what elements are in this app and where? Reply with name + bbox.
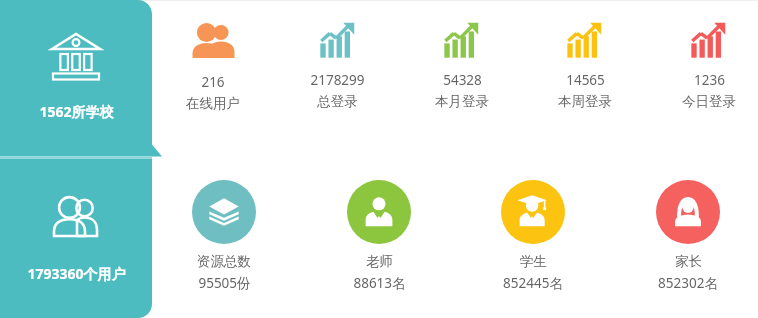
staticText: 今日登录 xyxy=(682,93,736,110)
button[interactable]: 学校 xyxy=(0,0,152,157)
other: 老师 xyxy=(347,180,411,244)
staticText: 资源总数 xyxy=(197,253,251,270)
staticText: 216 xyxy=(201,73,225,91)
staticText: 852302名 xyxy=(658,274,718,292)
button[interactable]: 老师 xyxy=(343,180,415,292)
button[interactable]: 本周登录 xyxy=(554,20,616,110)
other: 用户 xyxy=(48,188,104,244)
button[interactable]: 在线用户 xyxy=(182,20,244,112)
staticText: 本周登录 xyxy=(558,93,612,110)
other: 总登录 xyxy=(317,20,359,62)
other: 资源总数 xyxy=(192,180,256,244)
button[interactable]: 本月登录 xyxy=(431,20,493,110)
staticText: 54328 xyxy=(443,71,482,89)
staticText: 在线用户 xyxy=(186,95,240,112)
staticText: 2178299 xyxy=(310,71,365,89)
staticText: 852445名 xyxy=(503,274,563,292)
other: 本周登录 xyxy=(564,20,606,62)
staticText: 学生 xyxy=(520,253,547,270)
staticText: 1793360个用户 xyxy=(27,264,126,283)
button[interactable]: 总登录 xyxy=(306,20,369,110)
other: 今日登录 xyxy=(688,20,730,62)
button[interactable]: 今日登录 xyxy=(678,20,740,110)
other: 本月登录 xyxy=(441,20,483,62)
button[interactable]: 学生 xyxy=(497,180,569,292)
button[interactable]: 资源总数 xyxy=(188,180,260,292)
staticText: 本月登录 xyxy=(435,93,489,110)
other: 家长 xyxy=(656,180,720,244)
staticText: 老师 xyxy=(366,253,393,270)
staticText: 1562所学校 xyxy=(39,102,114,121)
staticText: 95505份 xyxy=(198,274,251,292)
other: 学校 xyxy=(50,30,102,82)
other: 在线用户 xyxy=(191,20,235,64)
button[interactable]: 用户 xyxy=(0,159,152,318)
staticText: 家长 xyxy=(675,253,702,270)
staticText: 总登录 xyxy=(317,93,358,110)
staticText: 1236 xyxy=(694,71,725,89)
staticText: 88613名 xyxy=(353,274,406,292)
button[interactable]: 家长 xyxy=(652,180,724,292)
staticText: 14565 xyxy=(566,71,605,89)
other: 学生 xyxy=(501,180,565,244)
